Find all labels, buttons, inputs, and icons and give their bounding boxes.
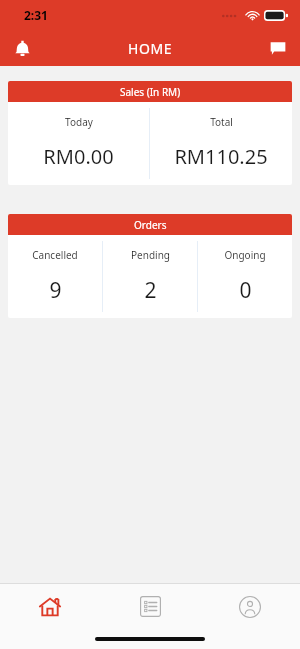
button[interactable]: Messages <box>256 30 300 66</box>
staticText: Total <box>210 115 233 129</box>
button[interactable]: Notifications <box>0 30 44 66</box>
staticText: 2 <box>144 276 157 305</box>
staticText: Sales (In RM) <box>120 85 181 99</box>
button[interactable]: Orders <box>8 214 292 318</box>
staticText: 9 <box>49 276 62 305</box>
staticText: HOME <box>128 39 173 58</box>
staticText: Ongoing <box>224 248 266 262</box>
staticText: 2:31 <box>24 7 48 23</box>
button[interactable]: Profile <box>200 584 300 629</box>
staticText: 0 <box>239 276 252 305</box>
staticText: RM0.00 <box>43 143 114 170</box>
button[interactable]: Sales (In RM) <box>8 81 292 185</box>
staticText: Pending <box>131 248 170 262</box>
staticText: Orders <box>134 218 167 232</box>
staticText: RM110.25 <box>174 143 268 170</box>
button[interactable]: Home <box>0 584 100 629</box>
staticText: Today <box>65 115 93 129</box>
button[interactable]: Orders <box>100 584 200 629</box>
staticText: Cancelled <box>32 248 78 262</box>
